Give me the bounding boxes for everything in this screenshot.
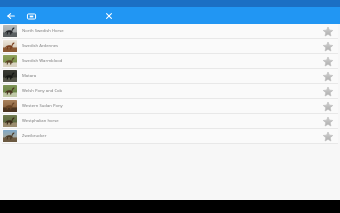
button[interactable]: Swedish Ardennes: [2, 39, 338, 53]
button[interactable]: Favorite: [321, 115, 334, 128]
button[interactable]: Swedish Warmblood: [2, 54, 338, 68]
staticText: Welsh Pony and Cob: [22, 88, 321, 94]
button[interactable]: Favorite: [321, 55, 334, 68]
staticText: Swedish Ardennes: [22, 43, 321, 49]
button[interactable]: Favorite: [321, 70, 334, 83]
button[interactable]: Favorite: [321, 130, 334, 143]
staticText: Westphalian horse: [22, 118, 321, 124]
button[interactable]: North Swedish Horse: [2, 24, 338, 38]
staticText: North Swedish Horse: [22, 28, 321, 34]
button[interactable]: View options: [24, 9, 38, 23]
button[interactable]: Favorite: [321, 85, 334, 98]
button[interactable]: Favorite: [321, 25, 334, 38]
button[interactable]: Westphalian horse: [2, 114, 338, 128]
staticText: Western Sudan Pony: [22, 103, 321, 109]
button[interactable]: Favorite: [321, 100, 334, 113]
staticText: Zweibrucker: [22, 133, 321, 139]
button[interactable]: Back: [4, 9, 18, 23]
staticText: Swedish Warmblood: [22, 58, 321, 64]
button[interactable]: Close: [102, 9, 116, 23]
button[interactable]: Zweibrucker: [2, 129, 338, 143]
button[interactable]: Western Sudan Pony: [2, 99, 338, 113]
button[interactable]: Favorite: [321, 40, 334, 53]
staticText: Matara: [22, 73, 321, 79]
button[interactable]: Welsh Pony and Cob: [2, 84, 338, 98]
button[interactable]: Matara: [2, 69, 338, 83]
